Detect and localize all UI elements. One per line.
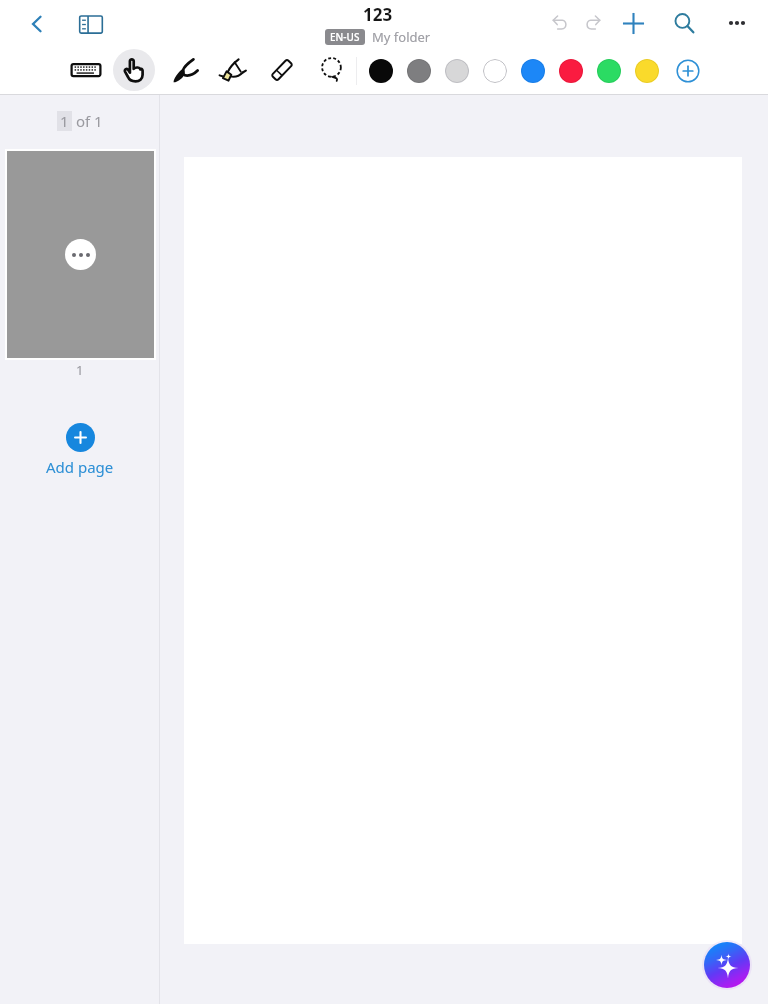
button[interactable]: Red bbox=[552, 52, 590, 90]
staticText: My folder bbox=[372, 28, 431, 46]
button[interactable]: Blue bbox=[514, 52, 552, 90]
button[interactable]: Eraser bbox=[259, 47, 305, 93]
button[interactable]: Black bbox=[362, 52, 400, 90]
button[interactable]: Add bbox=[613, 3, 653, 43]
staticText: 123 bbox=[363, 3, 393, 26]
staticText: 1 bbox=[76, 361, 84, 379]
button[interactable]: Green bbox=[590, 52, 628, 90]
button[interactable]: Yellow bbox=[628, 52, 666, 90]
button[interactable]: Page 1 thumbnail bbox=[7, 151, 154, 358]
staticText: Add page bbox=[46, 457, 114, 477]
button[interactable]: Lasso bbox=[309, 47, 355, 93]
button[interactable]: Light gray bbox=[438, 52, 476, 90]
button[interactable]: More options bbox=[717, 3, 757, 43]
button[interactable]: Undo bbox=[540, 3, 580, 43]
button[interactable]: Select bbox=[111, 47, 157, 93]
button[interactable]: Add color bbox=[674, 57, 702, 85]
button[interactable]: Back bbox=[17, 4, 57, 44]
button[interactable]: AI assist bbox=[704, 942, 750, 988]
button[interactable]: Redo bbox=[573, 3, 613, 43]
button[interactable]: Pen bbox=[162, 47, 208, 93]
staticText: of 1 bbox=[72, 111, 103, 131]
staticText: 1 bbox=[60, 111, 69, 131]
button[interactable]: Add page bbox=[24, 420, 136, 480]
button[interactable]: Toggle panel bbox=[71, 4, 111, 44]
button[interactable]: Keyboard bbox=[63, 47, 109, 93]
button[interactable]: Page options bbox=[65, 239, 96, 270]
button[interactable]: Highlighter bbox=[210, 47, 256, 93]
staticText: EN-US bbox=[330, 30, 360, 44]
button[interactable]: White bbox=[476, 52, 514, 90]
button[interactable]: Gray bbox=[400, 52, 438, 90]
button[interactable]: Search bbox=[664, 3, 704, 43]
